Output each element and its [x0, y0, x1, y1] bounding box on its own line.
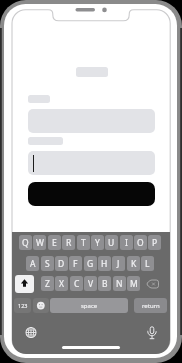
staticText: J — [117, 258, 120, 270]
button[interactable]: C — [70, 276, 83, 291]
button[interactable]: N — [113, 276, 126, 291]
button[interactable]: H — [98, 256, 111, 271]
staticText: 123 — [18, 302, 28, 309]
button[interactable]: S — [41, 256, 54, 271]
staticText: W — [36, 237, 44, 249]
staticText: X — [59, 278, 64, 290]
staticText: K — [131, 258, 137, 270]
button[interactable] — [28, 182, 155, 206]
button[interactable]: D — [55, 256, 68, 271]
button[interactable]: Q — [19, 235, 32, 250]
staticText: D — [58, 258, 65, 270]
button[interactable]: F — [69, 256, 82, 271]
staticText: N — [116, 278, 123, 290]
button[interactable]: U — [105, 235, 118, 250]
staticText: B — [102, 278, 108, 290]
button[interactable]: T — [77, 235, 90, 250]
staticText: O — [137, 237, 144, 249]
button[interactable]: Z — [41, 276, 54, 291]
button[interactable]: O — [134, 235, 147, 250]
staticText: E — [52, 237, 57, 249]
staticText: G — [87, 258, 94, 270]
button[interactable]: I — [120, 235, 133, 250]
button[interactable] — [33, 298, 49, 313]
button[interactable] — [28, 151, 155, 175]
staticText: R — [66, 237, 72, 249]
staticText: V — [88, 278, 94, 290]
button[interactable]: 123 — [14, 298, 31, 313]
button[interactable]: Y — [91, 235, 104, 250]
staticText: P — [152, 237, 158, 249]
staticText: L — [145, 258, 150, 270]
button[interactable]: B — [98, 276, 111, 291]
staticText: U — [108, 237, 115, 249]
button[interactable]: R — [62, 235, 75, 250]
staticText: M — [130, 278, 138, 290]
staticText: C — [74, 278, 80, 290]
staticText: Y — [95, 237, 100, 249]
staticText: space — [81, 302, 98, 310]
button[interactable]: E — [48, 235, 61, 250]
button[interactable]: A — [26, 256, 39, 271]
button[interactable]: G — [84, 256, 97, 271]
button[interactable]: space — [50, 298, 128, 313]
button[interactable]: L — [141, 256, 154, 271]
button[interactable]: return — [134, 298, 167, 313]
staticText: T — [81, 237, 86, 249]
button[interactable]: M — [127, 276, 140, 291]
button[interactable]: W — [33, 235, 46, 250]
button[interactable] — [15, 275, 34, 293]
button[interactable]: V — [84, 276, 97, 291]
staticText: Z — [45, 278, 50, 290]
button[interactable]: J — [112, 256, 125, 271]
button[interactable]: X — [55, 276, 68, 291]
staticText: return — [142, 302, 160, 310]
staticText: A — [30, 258, 36, 270]
staticText: Q — [22, 237, 29, 249]
staticText: H — [101, 258, 108, 270]
staticText: I — [125, 237, 128, 249]
button[interactable]: K — [127, 256, 140, 271]
staticText: S — [45, 258, 50, 270]
button[interactable]: P — [148, 235, 161, 250]
staticText: F — [73, 258, 78, 270]
